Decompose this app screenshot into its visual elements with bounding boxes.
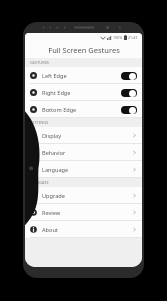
staticText: Full Screen Gestures xyxy=(48,45,120,55)
staticText: NAVIGATE xyxy=(30,180,49,185)
button[interactable]: Display xyxy=(25,127,142,144)
button[interactable]: Upgrade xyxy=(25,187,142,204)
button[interactable]: Language xyxy=(25,161,142,178)
button[interactable]: Behavior xyxy=(25,144,142,161)
staticText: Review xyxy=(42,209,133,217)
button[interactable]: Right Edge xyxy=(25,84,142,101)
staticText: Language xyxy=(42,166,133,174)
staticText: Display xyxy=(42,132,133,140)
button[interactable]: Bottom Edge toggle xyxy=(121,106,137,114)
button[interactable]: Left Edge toggle xyxy=(121,72,137,80)
staticText: GESTURES xyxy=(30,60,49,65)
staticText: Right Edge xyxy=(42,89,121,97)
button[interactable]: Review xyxy=(25,204,142,221)
staticText: Behavior xyxy=(42,149,133,157)
staticText: SETTINGS xyxy=(30,120,49,125)
button[interactable]: Right Edge toggle xyxy=(121,89,137,97)
button[interactable]: About xyxy=(25,221,142,238)
staticText: Left Edge xyxy=(42,72,121,80)
staticText: 100% xyxy=(113,35,123,40)
button[interactable]: Left Edge xyxy=(25,67,142,84)
staticText: Bottom Edge xyxy=(42,106,121,114)
button[interactable]: Bottom Edge xyxy=(25,101,142,118)
staticText: About xyxy=(42,226,133,234)
staticText: Upgrade xyxy=(42,192,133,200)
staticText: 21:43 xyxy=(128,35,138,40)
